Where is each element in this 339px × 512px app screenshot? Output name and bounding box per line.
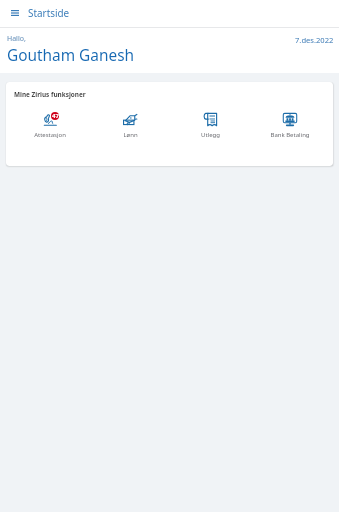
staticText: Mine Zirius funksjoner <box>14 90 86 99</box>
button[interactable]: 47 <box>10 112 90 139</box>
button[interactable]: Open navigation menu <box>3 0 27 27</box>
staticText: Attestasjon <box>34 131 66 139</box>
staticText: Goutham Ganesh <box>7 45 135 66</box>
staticText: 47 <box>52 112 59 120</box>
staticText: Utlegg <box>201 131 220 139</box>
staticText: Hallo, <box>7 34 26 44</box>
staticText: Startside <box>28 6 70 19</box>
button[interactable]: Lønn <box>90 112 170 139</box>
button[interactable]: Bank Betaling <box>250 112 330 139</box>
staticText: 7.des.2022 <box>295 35 334 45</box>
staticText: Bank Betaling <box>270 131 310 139</box>
button[interactable]: Utlegg <box>170 112 250 139</box>
staticText: Lønn <box>123 131 138 139</box>
